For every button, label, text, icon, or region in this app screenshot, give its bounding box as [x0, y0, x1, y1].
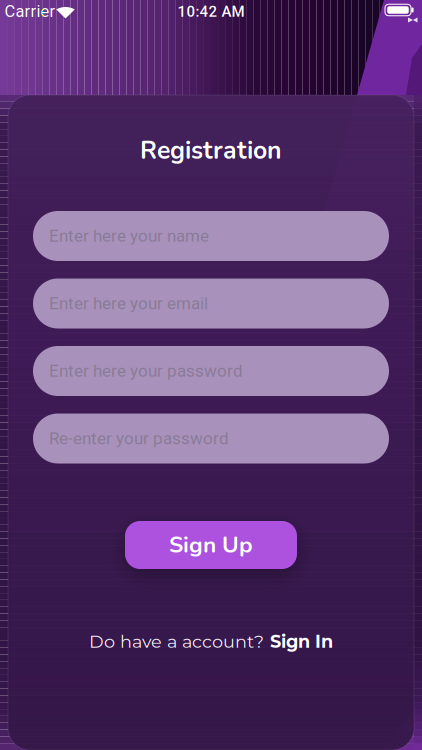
- staticText: Registration: [140, 134, 282, 167]
- button[interactable]: Sign Up: [125, 521, 297, 569]
- staticText: Enter here your password: [49, 361, 243, 381]
- button[interactable]: Enter here your password: [33, 346, 389, 396]
- button[interactable]: Sign In: [270, 631, 333, 652]
- staticText: Carrier: [4, 2, 55, 21]
- staticText: Enter here your name: [49, 226, 209, 246]
- staticText: Re-enter your password: [49, 428, 229, 448]
- staticText: 10:42 AM: [177, 3, 244, 20]
- button[interactable]: Re-enter your password: [33, 413, 389, 463]
- staticText: Do have a account?: [89, 631, 264, 652]
- button[interactable]: Enter here your name: [33, 211, 389, 261]
- staticText: Sign Up: [169, 529, 253, 560]
- staticText: Enter here your email: [49, 293, 208, 313]
- staticText: Sign In: [270, 631, 333, 652]
- button[interactable]: Enter here your email: [33, 278, 389, 328]
